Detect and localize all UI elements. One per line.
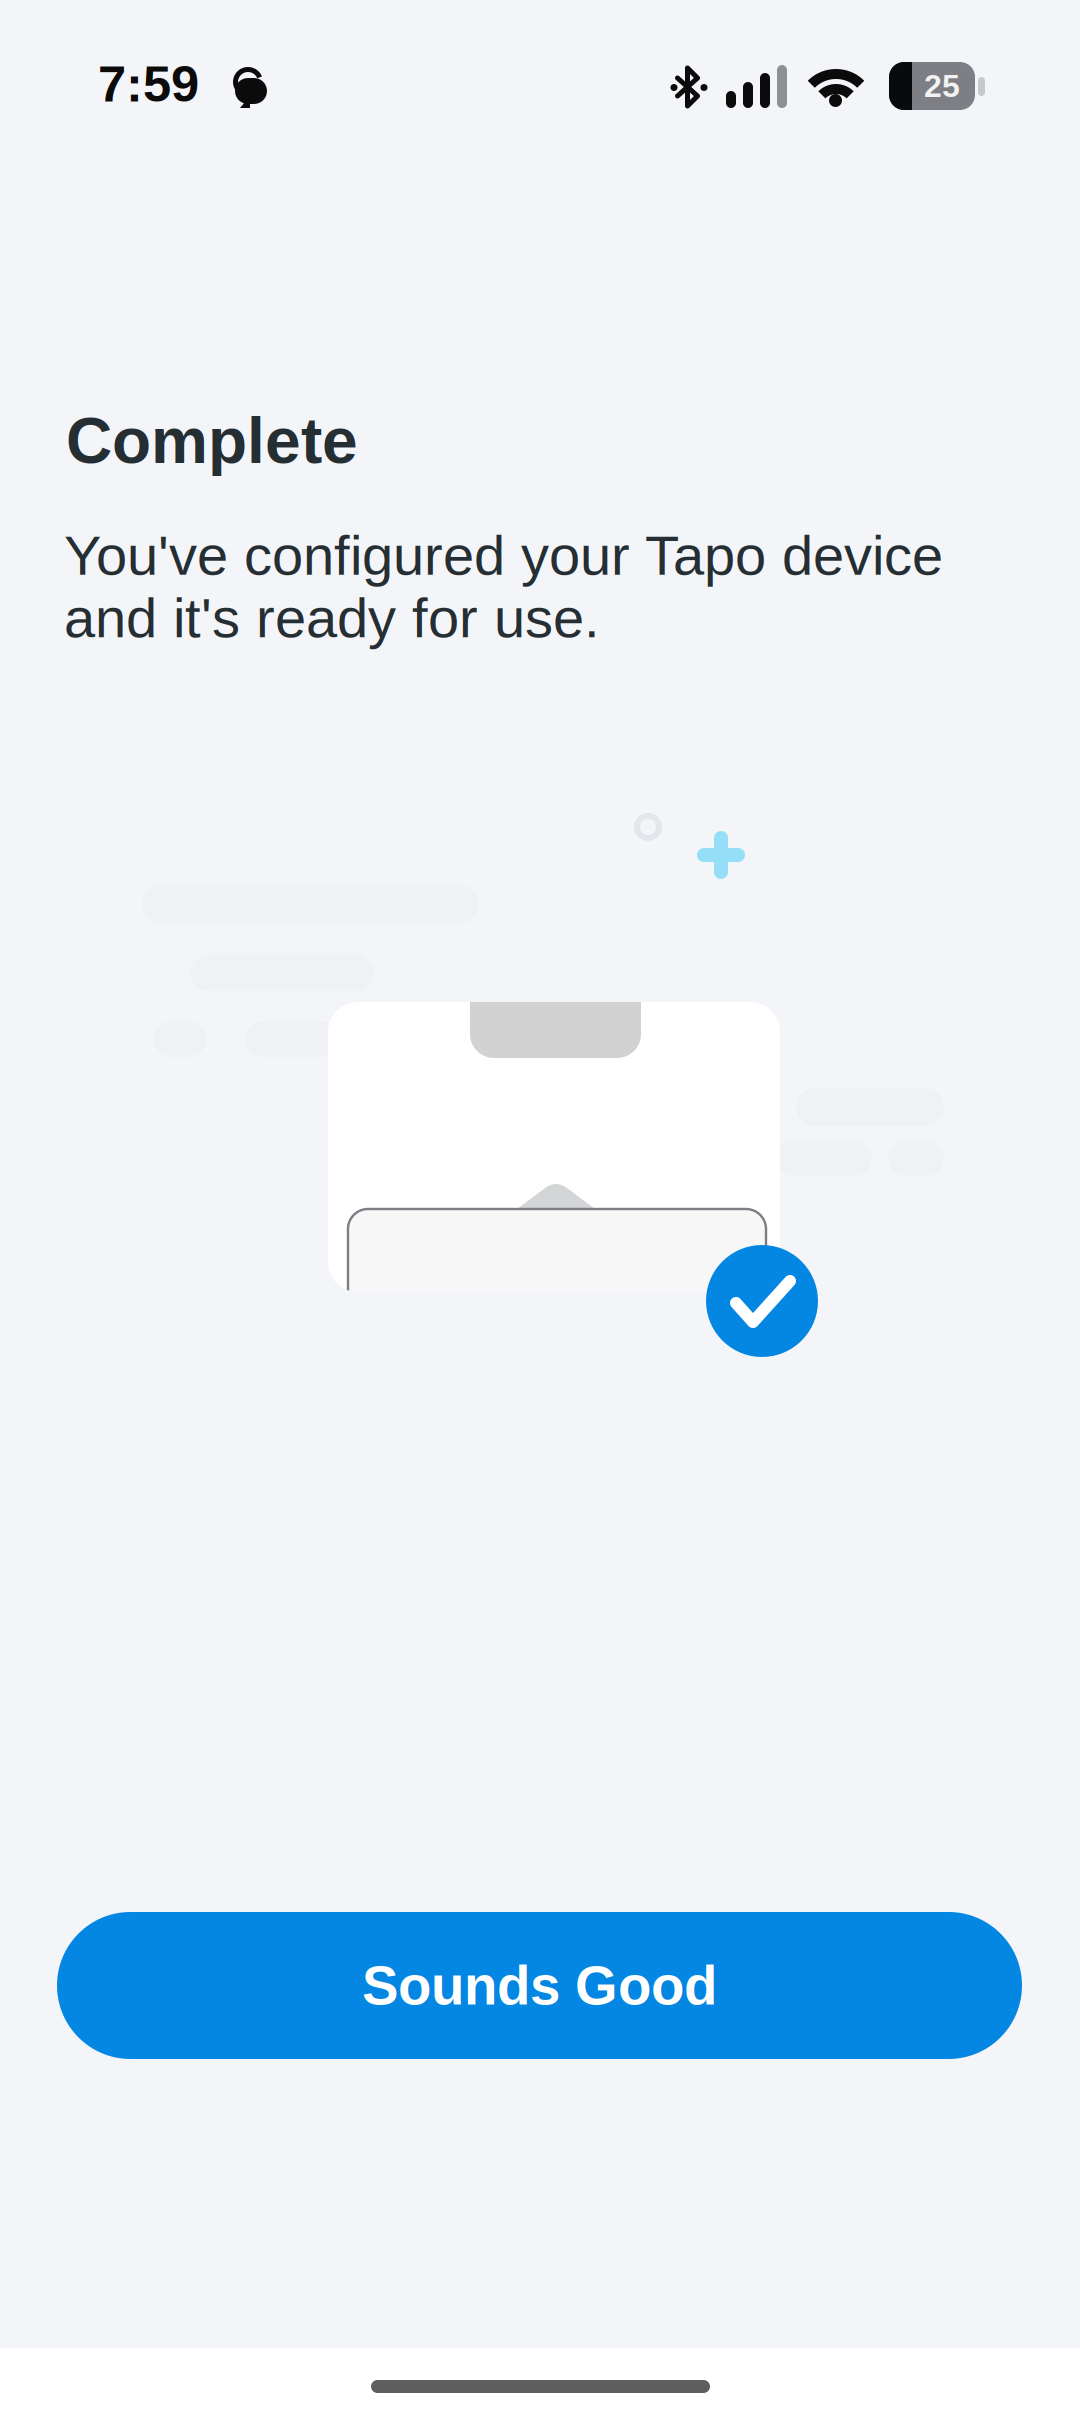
staticText: Sounds Good <box>362 1955 717 2016</box>
staticText: You've configured your Tapo device and i… <box>64 524 943 649</box>
staticText: 7:59 <box>98 56 199 112</box>
staticText: 25 <box>924 68 960 104</box>
staticText: Complete <box>66 405 358 476</box>
button[interactable]: Sounds Good <box>57 1912 1022 2059</box>
